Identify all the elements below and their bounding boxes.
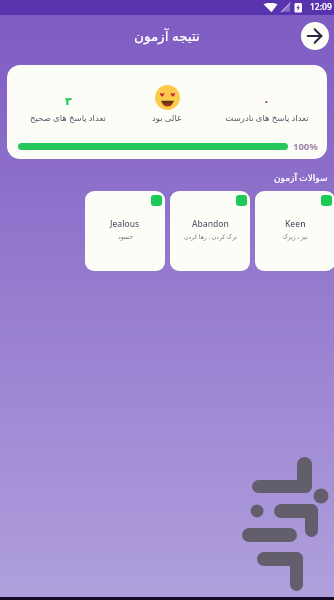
staticText: تیز ، زیرک [282, 233, 308, 241]
staticText: Abandon [192, 218, 229, 230]
staticText: ٠ [263, 95, 270, 108]
staticText: ٣ [65, 95, 72, 108]
staticText: تعداد پاسخ های نادرست [225, 112, 309, 124]
staticText: سوالات آزمون [274, 171, 328, 183]
button[interactable]: Next [301, 22, 329, 50]
button[interactable]: Abandon [170, 191, 250, 271]
button[interactable]: Keen [255, 191, 334, 271]
staticText: نتیجه آزمون [134, 27, 200, 45]
staticText: 12:09 [310, 1, 332, 13]
staticText: ترک کردن ، رها کردن [184, 233, 237, 241]
staticText: Jealous [110, 218, 140, 230]
staticText: عالی بود [152, 112, 183, 124]
staticText: حسود [118, 233, 133, 240]
staticText: 100% [293, 140, 318, 153]
staticText: تعداد پاسخ های صحیح [30, 112, 106, 124]
staticText: Keen [285, 218, 306, 230]
button[interactable]: Jealous [85, 191, 165, 271]
